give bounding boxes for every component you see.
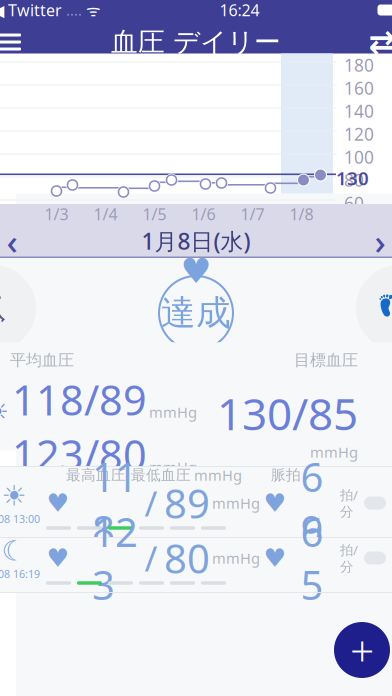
staticText: 130/85 xyxy=(217,384,358,442)
staticText: 123/80 xyxy=(12,427,147,482)
staticText: 60 xyxy=(344,191,364,214)
staticText: 血圧 デイリー xyxy=(111,26,281,58)
staticText: ◀ Twitter xyxy=(0,0,62,21)
staticText: 脈拍 xyxy=(271,466,301,484)
staticText: 1/6 xyxy=(191,203,215,225)
button[interactable]: Previous day xyxy=(0,224,40,258)
button[interactable]: Menu xyxy=(0,20,36,64)
staticText: 89 xyxy=(164,476,210,529)
staticText: 拍/分 xyxy=(340,486,358,520)
staticText: 118/89 xyxy=(12,372,147,427)
staticText: 180 xyxy=(344,53,374,76)
staticText: 1/7 xyxy=(240,203,264,225)
staticText: 🚶 xyxy=(0,293,15,322)
staticText: 80 xyxy=(344,168,364,191)
staticText: ♥ xyxy=(46,489,69,517)
staticText: 118 xyxy=(92,450,138,556)
staticText: 達成 xyxy=(161,292,231,334)
staticText: 最高血圧 xyxy=(66,466,126,484)
staticText: mmHg xyxy=(149,457,197,477)
staticText: 1/4 xyxy=(93,203,117,225)
staticText: 130 xyxy=(336,165,369,190)
staticText: 1/8 xyxy=(289,203,313,225)
staticText: 160 xyxy=(344,76,374,99)
staticText: ☾ xyxy=(0,451,9,482)
staticText: + xyxy=(350,622,374,678)
staticText: ♥ xyxy=(263,544,286,572)
staticText: ☀ xyxy=(0,397,9,427)
staticText: 1/08 16:19 xyxy=(0,567,40,581)
button[interactable]: Add reading xyxy=(334,622,390,678)
staticText: 120 xyxy=(344,122,374,145)
button[interactable]: ☾ xyxy=(0,538,392,592)
staticText: ♥ xyxy=(180,251,211,291)
staticText: / xyxy=(144,535,157,581)
staticText: ♥ xyxy=(46,544,69,572)
staticText: 123 xyxy=(92,505,138,611)
staticText: 1/3 xyxy=(44,203,68,225)
staticText: .... xyxy=(62,0,82,20)
staticText: mmHg xyxy=(212,548,260,568)
staticText: ☀ xyxy=(1,480,26,512)
staticText: 1月8日(水) xyxy=(141,226,250,256)
staticText: ᯤ xyxy=(82,0,101,21)
staticText: 140 xyxy=(344,99,374,122)
staticText: 1/5 xyxy=(142,203,166,225)
staticText: 1/08 13:00 xyxy=(0,512,40,526)
staticText: / xyxy=(144,480,157,526)
staticText: 平均血圧 xyxy=(10,350,74,370)
button[interactable]: 最高血圧 xyxy=(0,467,392,537)
staticText: ☾ xyxy=(1,535,26,567)
button[interactable]: Next day xyxy=(352,224,392,258)
staticText: › xyxy=(374,218,385,264)
staticText: 100 xyxy=(344,145,374,168)
staticText: 16:24 xyxy=(219,0,259,21)
staticText: ⇄ xyxy=(368,24,392,60)
staticText: 65 xyxy=(300,505,323,611)
staticText: 80 xyxy=(164,531,210,584)
staticText: mmHg xyxy=(310,442,358,462)
staticText: ‹ xyxy=(6,218,17,264)
staticText: mmHg xyxy=(149,402,197,422)
staticText: ♥ xyxy=(263,489,286,517)
button[interactable]: Sync xyxy=(356,20,392,64)
staticText: mmHg xyxy=(194,465,242,485)
staticText: 69 xyxy=(300,450,323,556)
staticText: 拍/分 xyxy=(340,541,358,575)
staticText: 最低血圧 xyxy=(131,466,191,484)
staticText: mmHg xyxy=(212,493,260,513)
staticText: 目標血圧 xyxy=(294,350,358,370)
staticText: 👣 xyxy=(377,293,392,322)
